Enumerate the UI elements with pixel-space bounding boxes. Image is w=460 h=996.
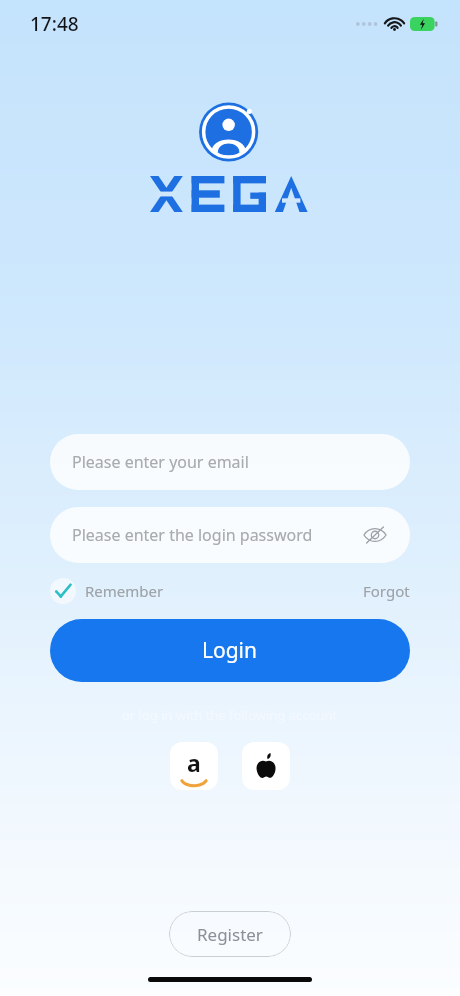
button[interactable]: Show password (360, 520, 390, 550)
staticText: Register (197, 923, 263, 946)
button[interactable]: Forgot (363, 581, 410, 601)
button[interactable]: Sign in with Amazon (170, 742, 218, 790)
staticText: Forgot (363, 581, 410, 601)
button[interactable]: Register (169, 911, 291, 957)
button[interactable]: Sign in with Apple (242, 742, 290, 790)
button[interactable]: Remember (50, 578, 164, 604)
staticText: Please enter the login password (72, 524, 313, 546)
staticText: Remember (85, 581, 164, 601)
staticText: Please enter your email (72, 451, 249, 473)
button[interactable]: Please enter your email (50, 434, 410, 490)
staticText: a (187, 747, 201, 778)
staticText: 17:48 (30, 11, 79, 37)
staticText: Login (202, 636, 258, 665)
button[interactable]: Please enter the login password (50, 507, 410, 563)
button[interactable]: Login (50, 619, 410, 682)
